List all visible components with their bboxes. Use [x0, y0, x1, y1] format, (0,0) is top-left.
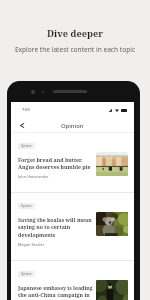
staticText: Japanese embassy is leading the anti-Chi… [18, 284, 96, 299]
staticText: Opinion [21, 144, 32, 148]
staticText: Opinion [21, 272, 32, 276]
button[interactable]: Back [15, 119, 29, 132]
staticText: Opinion [61, 122, 84, 130]
staticText: Forget bread and butter. Angus deserves … [18, 156, 96, 171]
staticText: Saving the koalas will mean saying no to… [18, 216, 96, 239]
staticText: Opinion [21, 204, 32, 208]
button[interactable]: Opinion [11, 133, 134, 192]
button[interactable]: Opinion [11, 193, 134, 260]
staticText: Explore the latest content in each topic [0, 45, 150, 54]
staticText: 7:50 [22, 107, 30, 112]
staticText: Dive deeper [0, 27, 150, 40]
staticText: John Hanscombe [18, 174, 49, 179]
staticText: Megan Kessler [18, 242, 45, 247]
button[interactable]: Opinion [11, 261, 134, 300]
